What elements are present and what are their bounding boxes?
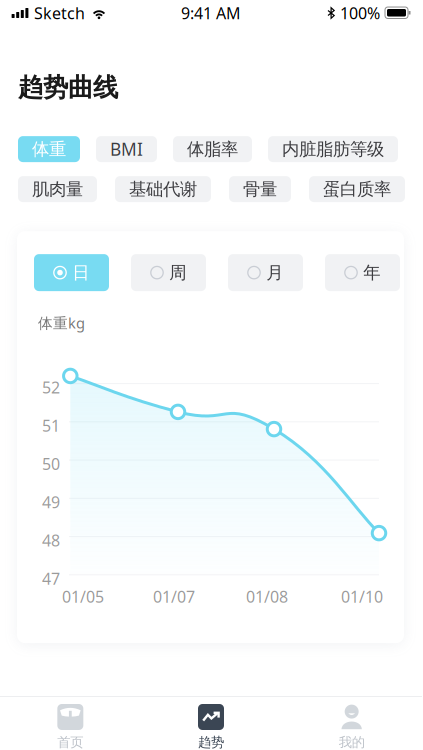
- button[interactable]: 趋势: [141, 696, 281, 750]
- staticText: 51: [42, 415, 60, 436]
- staticText: 周: [169, 262, 186, 283]
- staticText: 趋势: [198, 734, 224, 750]
- staticText: 01/05: [62, 586, 104, 607]
- button[interactable]: 基础代谢: [115, 176, 211, 202]
- button[interactable]: 周: [131, 254, 206, 291]
- staticText: 年: [363, 262, 380, 283]
- staticText: 骨量: [243, 178, 277, 200]
- staticText: 50: [42, 453, 60, 474]
- staticText: 月: [266, 262, 283, 283]
- staticText: 体重kg: [38, 313, 85, 333]
- staticText: 100%: [340, 2, 380, 24]
- button[interactable]: BMI: [96, 136, 157, 162]
- staticText: 52: [42, 377, 60, 398]
- staticText: 01/10: [341, 586, 383, 607]
- staticText: 体脂率: [187, 138, 238, 160]
- staticText: 日: [72, 262, 89, 283]
- button[interactable]: 体重: [18, 136, 80, 162]
- staticText: 47: [42, 568, 60, 589]
- button[interactable]: 月: [228, 254, 303, 291]
- staticText: 首页: [57, 734, 83, 750]
- staticText: 48: [42, 530, 60, 551]
- button[interactable]: 蛋白质率: [309, 176, 405, 202]
- staticText: 49: [42, 491, 60, 512]
- staticText: 我的: [339, 734, 365, 750]
- staticText: 趋势曲线: [18, 72, 118, 103]
- button[interactable]: 内脏脂肪等级: [268, 136, 398, 162]
- staticText: 01/07: [153, 586, 195, 607]
- button[interactable]: 我的: [281, 696, 422, 750]
- staticText: 基础代谢: [129, 178, 197, 200]
- button[interactable]: 日: [34, 254, 109, 291]
- staticText: 体重: [32, 138, 66, 160]
- button[interactable]: 首页: [0, 696, 141, 750]
- staticText: 蛋白质率: [323, 178, 391, 200]
- button[interactable]: 肌肉量: [18, 176, 97, 202]
- staticText: Sketch: [34, 2, 85, 24]
- staticText: 01/08: [246, 586, 288, 607]
- staticText: 内脏脂肪等级: [282, 138, 384, 160]
- staticText: 肌肉量: [32, 178, 83, 200]
- button[interactable]: 年: [325, 254, 400, 291]
- button[interactable]: 骨量: [229, 176, 291, 202]
- button[interactable]: 体脂率: [173, 136, 252, 162]
- staticText: BMI: [110, 138, 143, 161]
- staticText: 9:41 AM: [181, 2, 241, 24]
